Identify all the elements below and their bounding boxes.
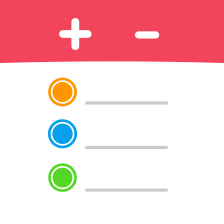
button[interactable]: Item (0, 0, 224, 224)
button[interactable]: Item (0, 0, 224, 224)
button[interactable]: Add item (50, 9, 100, 59)
button[interactable]: Item (0, 0, 224, 224)
button[interactable]: Remove item (125, 13, 169, 57)
